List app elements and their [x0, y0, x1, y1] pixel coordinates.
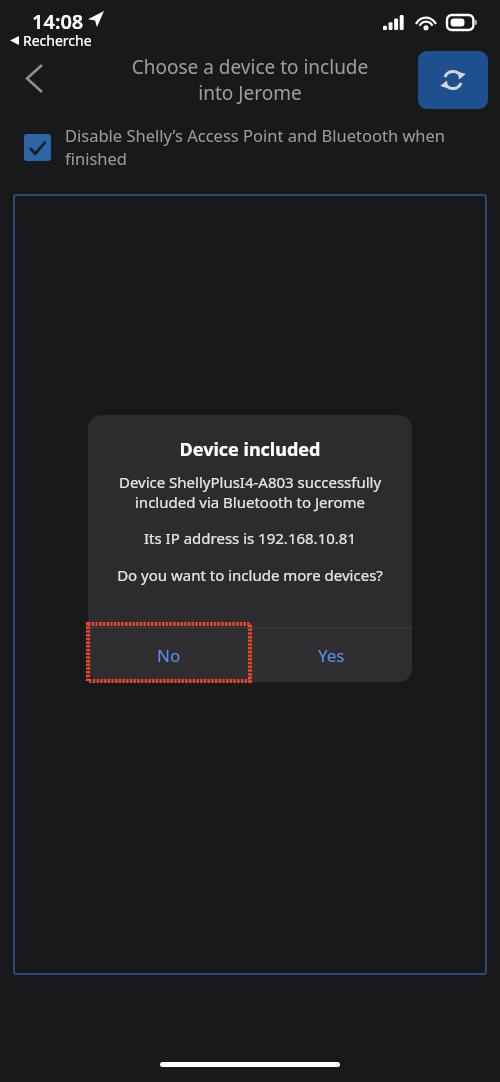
staticText: Choose a device to include into Jerome	[95, 54, 405, 106]
staticText: No	[157, 644, 181, 667]
staticText: Disable Shelly’s Access Point and Blueto…	[65, 124, 460, 170]
staticText: 14:08	[32, 8, 84, 35]
staticText: Its IP address is 192.168.10.81	[100, 528, 400, 548]
staticText: Device included	[88, 437, 412, 462]
button[interactable]: Disable Shelly’s Access Point and Blueto…	[24, 124, 460, 170]
button[interactable]: Yes	[250, 628, 412, 682]
staticText: Recherche	[23, 31, 92, 50]
button[interactable]: No	[88, 628, 250, 682]
staticText: Do you want to include more devices?	[98, 565, 402, 585]
staticText: Yes	[318, 644, 345, 667]
button[interactable]: Refresh	[418, 51, 488, 109]
button[interactable]: Back	[8, 52, 60, 104]
staticText: Device ShellyPlusI4-A803 successfully in…	[101, 472, 399, 512]
